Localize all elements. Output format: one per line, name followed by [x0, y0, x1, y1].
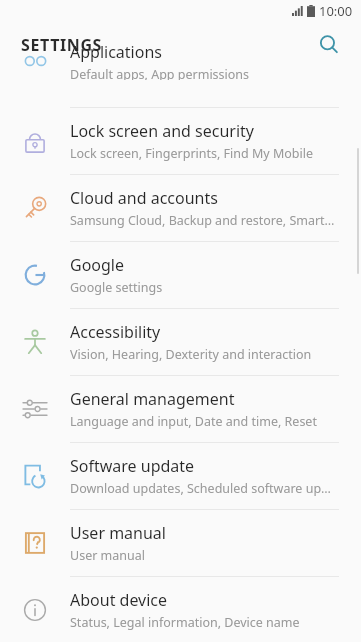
button[interactable]: Applications: [0, 68, 361, 107]
staticText: Accessibility: [70, 321, 161, 343]
staticText: Google settings: [70, 279, 163, 296]
staticText: Cloud and accounts: [70, 187, 218, 209]
button[interactable]: Search: [307, 23, 351, 67]
button[interactable]: Cloud and accounts: [0, 175, 361, 241]
staticText: Language and input, Date and time, Reset: [70, 413, 317, 430]
staticText: General management: [70, 388, 235, 410]
button[interactable]: Lock screen and security: [0, 108, 361, 174]
staticText: User manual: [70, 547, 145, 564]
staticText: Lock screen and security: [70, 120, 254, 142]
staticText: Google: [70, 254, 125, 276]
staticText: SETTINGS: [21, 34, 102, 56]
staticText: Status, Legal information, Device name: [70, 614, 300, 631]
staticText: Lock screen, Fingerprints, Find My Mobil…: [70, 145, 314, 162]
button[interactable]: Google: [0, 242, 361, 308]
button[interactable]: User manual: [0, 510, 361, 576]
staticText: Default apps, App permissions: [70, 66, 250, 80]
button[interactable]: General management: [0, 376, 361, 442]
staticText: 10:00: [319, 2, 353, 20]
staticText: Samsung Cloud, Backup and restore, Smart…: [70, 212, 335, 229]
button[interactable]: Software update: [0, 443, 361, 509]
staticText: About device: [70, 589, 168, 611]
staticText: Vision, Hearing, Dexterity and interacti…: [70, 346, 312, 363]
staticText: Download updates, Scheduled software up…: [70, 480, 331, 497]
staticText: User manual: [70, 522, 166, 544]
button[interactable]: About device: [0, 577, 361, 642]
button[interactable]: Accessibility: [0, 309, 361, 375]
staticText: Applications: [70, 41, 162, 63]
staticText: Software update: [70, 455, 195, 477]
